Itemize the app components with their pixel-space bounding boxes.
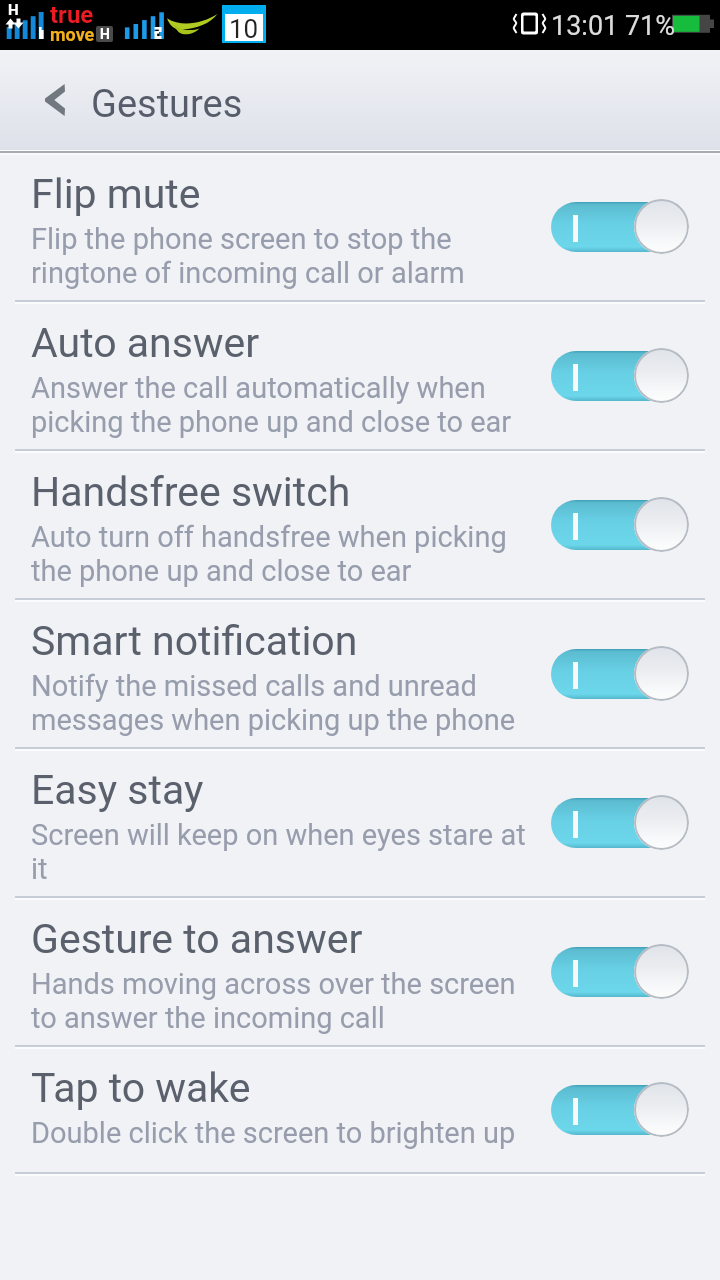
- staticText: Gesture to answer: [31, 915, 363, 963]
- staticText: Notify the missed calls and unread: [31, 669, 477, 703]
- button[interactable]: Toggle Tap to wake: [551, 1082, 688, 1137]
- staticText: Flip mute: [31, 170, 201, 218]
- staticText: 13:01 71%: [551, 10, 676, 42]
- staticText: H: [8, 1, 19, 19]
- staticText: Auto turn off handsfree when picking: [31, 520, 507, 554]
- staticText: Easy stay: [31, 766, 204, 814]
- staticText: Smart notification: [31, 617, 358, 665]
- button[interactable]: Tap to wake: [0, 1046, 720, 1173]
- staticText: true: [50, 1, 94, 29]
- staticText: Tap to wake: [31, 1064, 251, 1112]
- staticText: Double click the screen to brighten up: [31, 1116, 516, 1150]
- staticText: Gestures: [91, 82, 243, 127]
- staticText: Answer the call automatically when: [31, 371, 486, 405]
- staticText: Hands moving across over the screen: [31, 967, 516, 1001]
- staticText: Auto answer: [31, 319, 260, 367]
- button[interactable]: Flip mute: [0, 152, 720, 301]
- button[interactable]: Toggle Smart notification: [551, 646, 688, 701]
- button[interactable]: Easy stay: [0, 748, 720, 897]
- staticText: the phone up and close to ear: [31, 554, 412, 588]
- button[interactable]: Toggle Handsfree switch: [551, 497, 688, 552]
- button[interactable]: Handsfree switch: [0, 450, 720, 599]
- button[interactable]: Auto answer: [0, 301, 720, 450]
- staticText: messages when picking up the phone: [31, 703, 516, 737]
- staticText: H: [100, 26, 110, 42]
- button[interactable]: Toggle Easy stay: [551, 795, 688, 850]
- button[interactable]: Smart notification: [0, 599, 720, 748]
- staticText: it: [31, 852, 48, 886]
- staticText: 10: [229, 14, 259, 41]
- button[interactable]: Toggle Auto answer: [551, 348, 688, 403]
- staticText: move: [50, 24, 95, 45]
- staticText: Handsfree switch: [31, 468, 351, 516]
- button[interactable]: Toggle Gesture to answer: [551, 944, 688, 999]
- staticText: to answer the incoming call: [31, 1001, 385, 1035]
- button[interactable]: Back: [36, 74, 74, 126]
- button[interactable]: Toggle Flip mute: [551, 199, 688, 254]
- staticText: Flip the phone screen to stop the: [31, 222, 452, 256]
- staticText: Screen will keep on when eyes stare at: [31, 818, 526, 852]
- button[interactable]: Gesture to answer: [0, 897, 720, 1046]
- staticText: picking the phone up and close to ear: [31, 405, 512, 439]
- staticText: ringtone of incoming call or alarm: [31, 256, 465, 290]
